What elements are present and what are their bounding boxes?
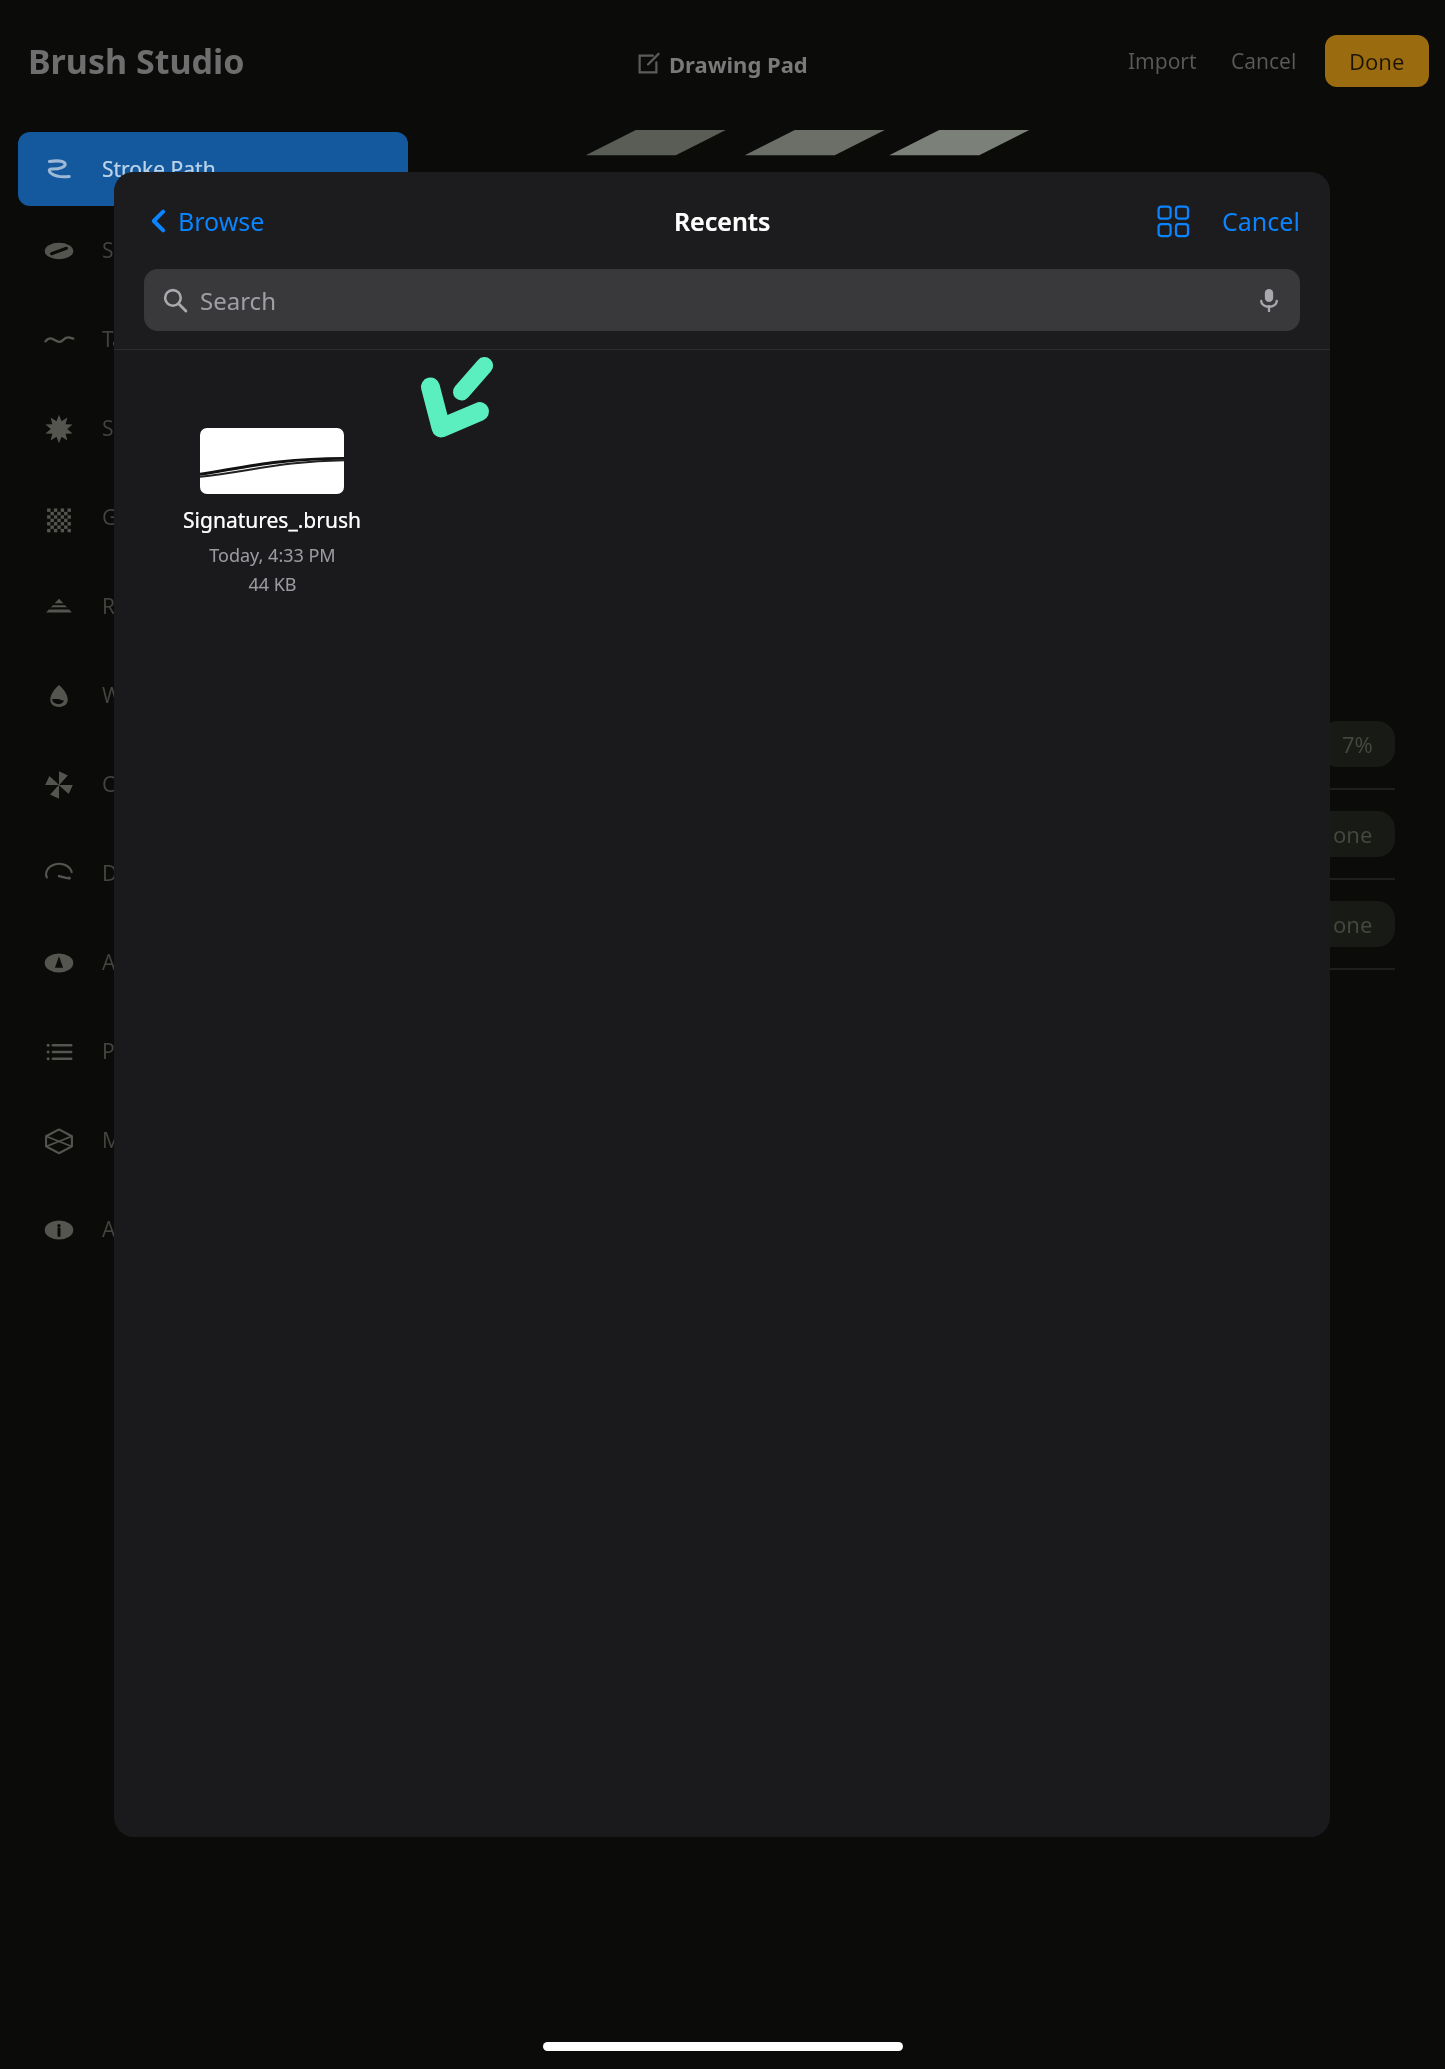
staticText: 7% <box>1342 729 1373 759</box>
button[interactable]: Grain <box>18 473 408 562</box>
staticText: Signatures_.brush <box>183 506 361 535</box>
staticText: Stroke Path <box>102 155 216 184</box>
staticText: Cancel <box>1222 204 1300 238</box>
staticText: one <box>1333 819 1373 849</box>
button[interactable]: Wet Mix <box>18 651 408 740</box>
button[interactable]: Search <box>144 269 1300 331</box>
staticText: Done <box>1349 46 1405 76</box>
other: Voice search <box>1256 287 1282 313</box>
staticText: Search <box>200 284 276 317</box>
button[interactable]: Taper <box>18 295 408 384</box>
staticText: one <box>1333 909 1373 939</box>
button[interactable]: Grid view <box>1150 198 1196 244</box>
button[interactable]: About <box>18 1185 408 1274</box>
staticText: Wet Mix <box>102 681 182 710</box>
staticText: Dynamics <box>102 859 198 888</box>
button[interactable]: Signatures_.brush <box>172 428 372 597</box>
staticText: Browse <box>178 204 265 238</box>
staticText: Today, 4:33 PM <box>209 543 336 568</box>
staticText: Taper <box>102 325 158 354</box>
button[interactable]: Cancel <box>1214 198 1308 244</box>
staticText: About <box>102 1215 162 1244</box>
staticText: Brush Studio <box>28 38 245 84</box>
staticText: Drawing Pad <box>669 49 808 79</box>
staticText: Materials <box>102 1126 194 1155</box>
button[interactable]: Done <box>1325 35 1429 87</box>
button[interactable]: Materials <box>18 1096 408 1185</box>
button[interactable]: Shape <box>18 206 408 295</box>
button[interactable]: Dynamics <box>18 829 408 918</box>
button[interactable]: Import <box>1118 47 1207 76</box>
button[interactable]: Sparkle <box>18 384 408 473</box>
button[interactable]: Stroke Path <box>18 132 408 206</box>
button[interactable]: Cancel <box>1221 47 1307 76</box>
staticText: Apple Pencil <box>102 948 223 977</box>
button[interactable]: Color Dynamics <box>18 740 408 829</box>
button[interactable]: Apple Pencil <box>18 918 408 1007</box>
staticText: Rendering <box>102 592 205 621</box>
button[interactable]: Rendering <box>18 562 408 651</box>
button[interactable]: Properties <box>18 1007 408 1096</box>
button[interactable]: Browse <box>138 198 273 244</box>
staticText: Recents <box>674 204 771 238</box>
staticText: 44 KB <box>248 572 297 597</box>
staticText: Shape <box>102 236 164 265</box>
staticText: Properties <box>102 1037 204 1066</box>
staticText: Sparkle <box>102 414 176 443</box>
staticText: Color Dynamics <box>102 770 257 799</box>
staticText: Grain <box>102 503 156 532</box>
